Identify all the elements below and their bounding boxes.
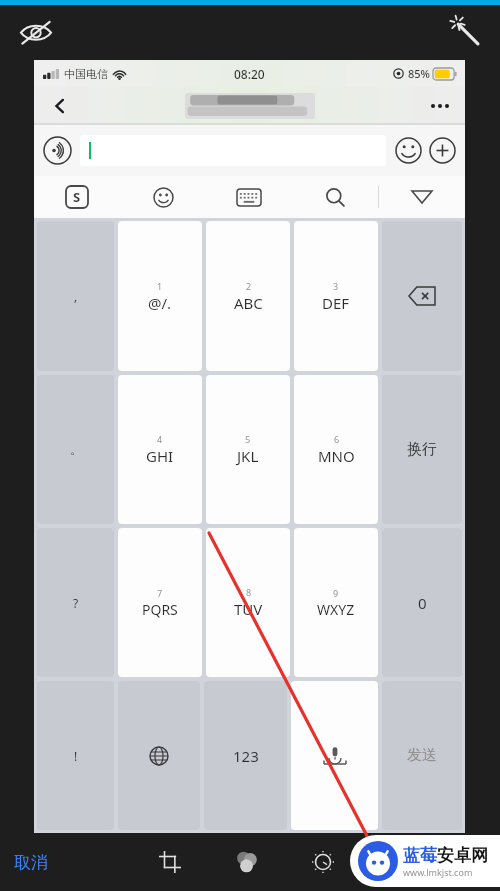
staticText: 换行: [407, 440, 437, 459]
button[interactable]: 换行: [382, 375, 462, 524]
button[interactable]: 1: [118, 221, 202, 371]
button[interactable]: Hide keyboard: [379, 176, 465, 218]
staticText: 。: [70, 442, 82, 457]
button[interactable]: 0: [382, 528, 462, 677]
button[interactable]: 123: [204, 681, 287, 830]
staticText: ABC: [234, 293, 263, 313]
button[interactable]: Keyboard: [206, 176, 292, 218]
button[interactable]: [382, 221, 462, 371]
button[interactable]: Filters: [230, 845, 264, 879]
staticText: 8: [246, 586, 252, 598]
button[interactable]: Crop: [153, 845, 187, 879]
button[interactable]: Sogou: [34, 176, 120, 218]
staticText: @/.: [148, 293, 172, 313]
button[interactable]: ?: [37, 528, 114, 677]
staticText: S: [73, 188, 81, 206]
button[interactable]: [291, 681, 378, 830]
button[interactable]: 9: [294, 528, 378, 677]
button[interactable]: 6: [294, 375, 378, 524]
staticText: 1: [157, 280, 163, 292]
button[interactable]: 2: [206, 221, 290, 371]
staticText: 3: [333, 280, 339, 292]
staticText: 发送: [407, 746, 437, 765]
staticText: 85%: [408, 66, 430, 81]
staticText: 安卓网: [437, 845, 488, 866]
button[interactable]: Text: [383, 845, 417, 879]
staticText: TUV: [234, 599, 263, 619]
staticText: WXYZ: [317, 600, 355, 619]
staticText: GHI: [146, 446, 174, 466]
staticText: 4: [157, 433, 163, 445]
button[interactable]: 4: [118, 375, 202, 524]
button[interactable]: Adjust: [306, 845, 340, 879]
button[interactable]: Magic wand: [448, 14, 482, 48]
button[interactable]: Emoji: [120, 176, 206, 218]
button[interactable]: Back: [46, 92, 74, 120]
staticText: 7: [157, 587, 163, 599]
staticText: www.lmkjst.com: [403, 866, 473, 878]
button[interactable]: 5: [206, 375, 290, 524]
staticText: 2: [246, 280, 252, 292]
staticText: 蓝莓: [403, 845, 437, 866]
button[interactable]: Search: [292, 176, 378, 218]
button[interactable]: More: [429, 137, 456, 164]
staticText: 08:20: [234, 66, 265, 82]
button[interactable]: 3: [294, 221, 378, 371]
button[interactable]: Emoji: [395, 137, 422, 164]
staticText: 123: [233, 746, 259, 766]
button[interactable]: 8: [206, 528, 290, 677]
staticText: MNO: [318, 446, 355, 466]
staticText: ,: [74, 288, 78, 304]
staticText: ?: [73, 595, 79, 611]
staticText: !: [74, 748, 78, 764]
staticText: DEF: [322, 293, 350, 313]
staticText: JKL: [237, 446, 259, 466]
button[interactable]: More options: [425, 91, 455, 121]
button[interactable]: Hide: [18, 14, 54, 50]
button[interactable]: [80, 135, 386, 166]
button[interactable]: 取消: [14, 852, 48, 873]
staticText: 6: [334, 433, 340, 445]
button[interactable]: [118, 681, 200, 830]
button[interactable]: 7: [118, 528, 202, 677]
button[interactable]: !: [37, 681, 114, 830]
button[interactable]: Voice input: [43, 136, 72, 165]
staticText: 5: [245, 433, 251, 445]
staticText: 0: [418, 593, 427, 613]
button[interactable]: 发送: [382, 681, 462, 830]
staticText: PQRS: [142, 600, 178, 619]
staticText: 中国电信: [64, 67, 108, 81]
staticText: 9: [333, 587, 339, 599]
